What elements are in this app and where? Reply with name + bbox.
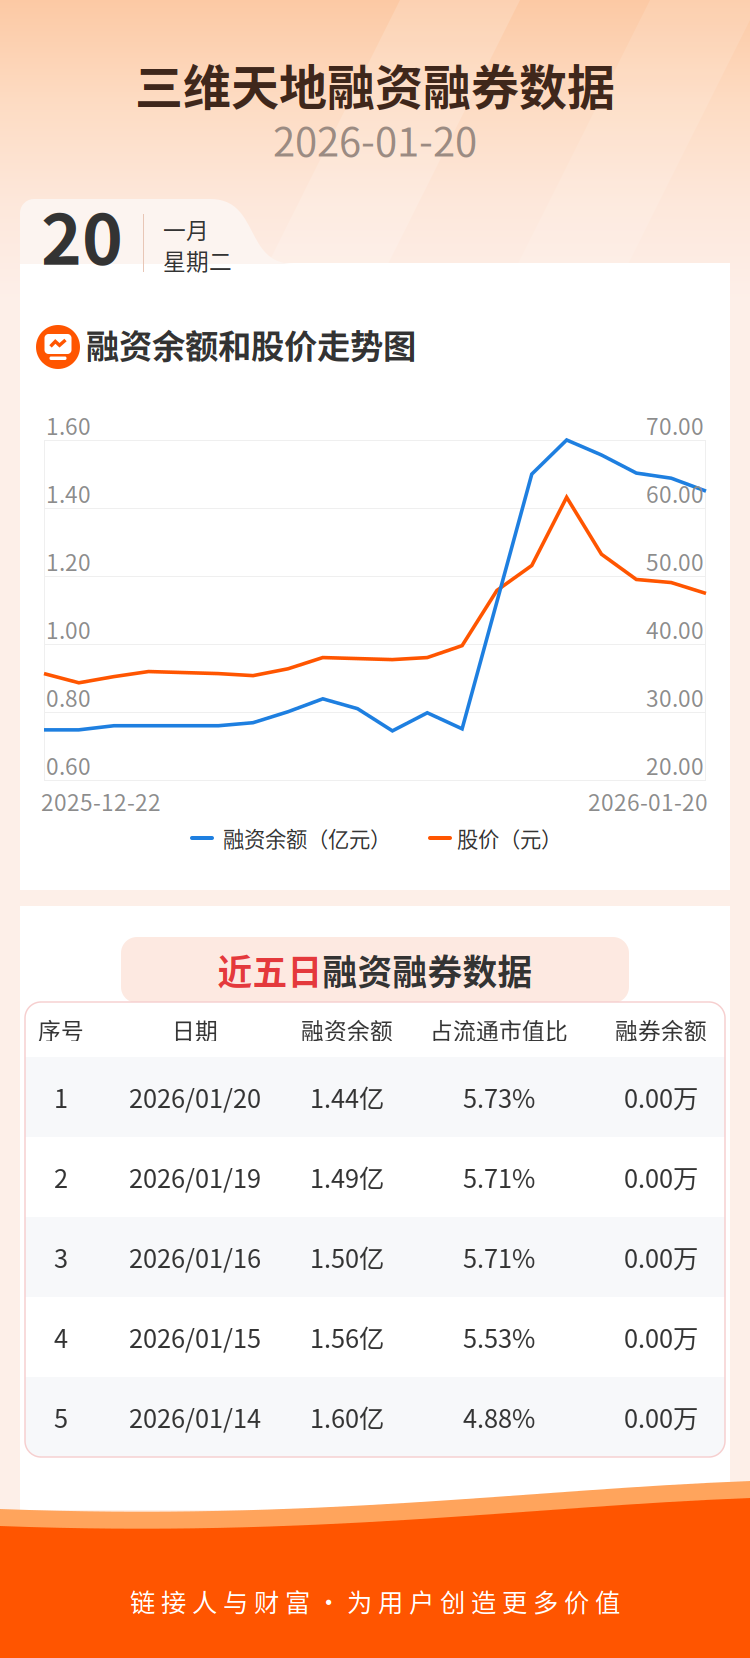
staticText: 财 (254, 1583, 279, 1619)
staticText: 3 (54, 1239, 68, 1275)
staticText: 50.00 (646, 545, 704, 577)
staticText: 1.20 (46, 545, 91, 577)
staticText: 1.50亿 (310, 1239, 384, 1275)
staticText: 0.00万 (624, 1079, 698, 1115)
staticText: · (316, 1583, 341, 1619)
staticText: 5.71% (463, 1239, 535, 1275)
staticText: 20 (41, 184, 123, 285)
staticText: 多 (533, 1583, 558, 1619)
staticText: 接 (161, 1583, 186, 1619)
staticText: 2026-01-20 (273, 110, 477, 168)
staticText: 1.49亿 (310, 1159, 384, 1195)
staticText: 值 (595, 1583, 620, 1619)
staticText: 1.56亿 (310, 1319, 384, 1355)
staticText: 60.00 (646, 477, 704, 509)
staticText: 链 (130, 1583, 155, 1619)
staticText: 日期 (172, 1013, 218, 1046)
staticText: 20.00 (646, 749, 704, 781)
staticText: 4.88% (463, 1399, 535, 1435)
staticText: 5.73% (463, 1079, 535, 1115)
staticText: 2026/01/14 (129, 1399, 261, 1435)
staticText: 30.00 (646, 681, 704, 713)
staticText: 5 (54, 1399, 68, 1435)
staticText: 0.00万 (624, 1319, 698, 1355)
staticText: 为 (347, 1583, 372, 1619)
staticText: 造 (471, 1583, 496, 1619)
staticText: 户 (409, 1583, 434, 1619)
staticText: 融资余额 (301, 1013, 393, 1046)
staticText: 0.60 (46, 749, 91, 781)
staticText: 0.80 (46, 681, 91, 713)
staticText: 2026/01/20 (129, 1079, 261, 1115)
staticText: 1.00 (46, 613, 91, 645)
staticText: 1.60 (46, 409, 91, 441)
staticText: 5.53% (463, 1319, 535, 1355)
staticText: 用 (378, 1583, 403, 1619)
staticText: 2026/01/16 (129, 1239, 261, 1275)
staticText: 70.00 (646, 409, 704, 441)
staticText: 2 (54, 1159, 68, 1195)
staticText: 2026-01-20 (588, 785, 708, 817)
staticText: 2025-12-22 (41, 785, 161, 817)
staticText: 一月 (163, 213, 209, 245)
staticText: 0.00万 (624, 1239, 698, 1275)
staticText: 融资融券数据 (322, 945, 532, 995)
staticText: 2026/01/19 (129, 1159, 261, 1195)
staticText: 5.71% (463, 1159, 535, 1195)
staticText: 融券余额 (615, 1013, 707, 1046)
staticText: 更 (502, 1583, 527, 1619)
staticText: 1 (54, 1079, 68, 1115)
staticText: 40.00 (646, 613, 704, 645)
staticText: 星期二 (163, 244, 232, 276)
staticText: 0.00万 (624, 1159, 698, 1195)
staticText: 2026/01/15 (129, 1319, 261, 1355)
staticText: 0.00万 (624, 1399, 698, 1435)
staticText: 融资余额和股价走势图 (86, 320, 416, 368)
staticText: 近五日 (217, 945, 322, 995)
staticText: 1.40 (46, 477, 91, 509)
staticText: 占流通市值比 (430, 1013, 568, 1046)
staticText: 与 (223, 1583, 248, 1619)
staticText: 1.60亿 (310, 1399, 384, 1435)
staticText: 序号 (38, 1013, 84, 1046)
staticText: 1.44亿 (310, 1079, 384, 1115)
staticText: 富 (285, 1583, 310, 1619)
staticText: 创 (440, 1583, 465, 1619)
staticText: 价 (564, 1583, 589, 1619)
staticText: 股价（元） (457, 823, 562, 853)
staticText: 4 (54, 1319, 68, 1355)
staticText: 融资余额（亿元） (223, 823, 391, 853)
staticText: 三维天地融资融券数据 (135, 49, 615, 119)
staticText: 人 (192, 1583, 217, 1619)
